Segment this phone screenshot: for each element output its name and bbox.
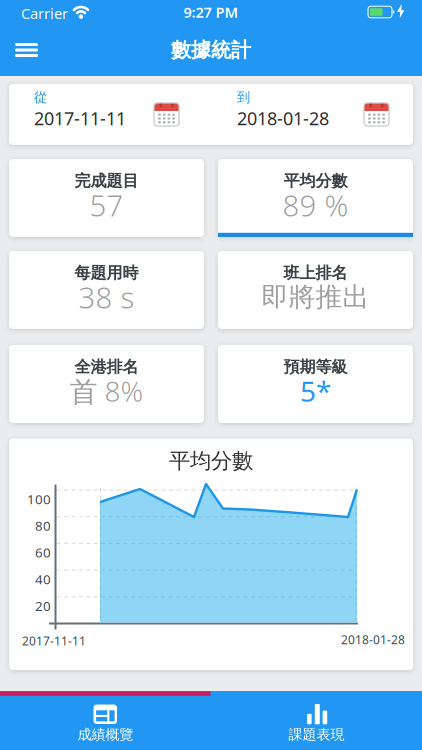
- staticText: 89 %: [282, 185, 348, 224]
- staticText: 從: [34, 89, 47, 105]
- staticText: 預期等級: [283, 357, 347, 377]
- staticText: 40: [35, 570, 51, 588]
- staticText: 平均分數: [283, 171, 347, 191]
- staticText: 完成題目: [74, 171, 138, 191]
- staticText: 2017-11-11: [22, 633, 86, 649]
- staticText: 到: [237, 89, 250, 105]
- staticText: 2017-11-11: [34, 106, 126, 130]
- staticText: 100: [27, 490, 51, 508]
- staticText: 57: [89, 185, 123, 224]
- staticText: 成績概覽: [77, 726, 133, 743]
- staticText: 每題用時: [74, 263, 138, 283]
- staticText: 9:27 PM: [183, 2, 238, 22]
- staticText: 2018-01-28: [341, 631, 405, 647]
- staticText: 20: [35, 597, 51, 615]
- staticText: 首 8%: [69, 372, 143, 410]
- staticText: 平均分數: [169, 448, 253, 474]
- staticText: 數據統計: [171, 38, 251, 62]
- staticText: 課題表現: [288, 726, 344, 743]
- staticText: 38 s: [78, 277, 134, 316]
- staticText: 5*: [300, 372, 331, 410]
- staticText: 80: [35, 517, 51, 534]
- staticText: 全港排名: [74, 357, 138, 377]
- staticText: 2018-01-28: [237, 106, 329, 130]
- staticText: 60: [35, 543, 51, 561]
- staticText: 即將推出: [261, 281, 369, 313]
- staticText: Carrier: [21, 3, 68, 23]
- staticText: 班上排名: [283, 263, 347, 283]
